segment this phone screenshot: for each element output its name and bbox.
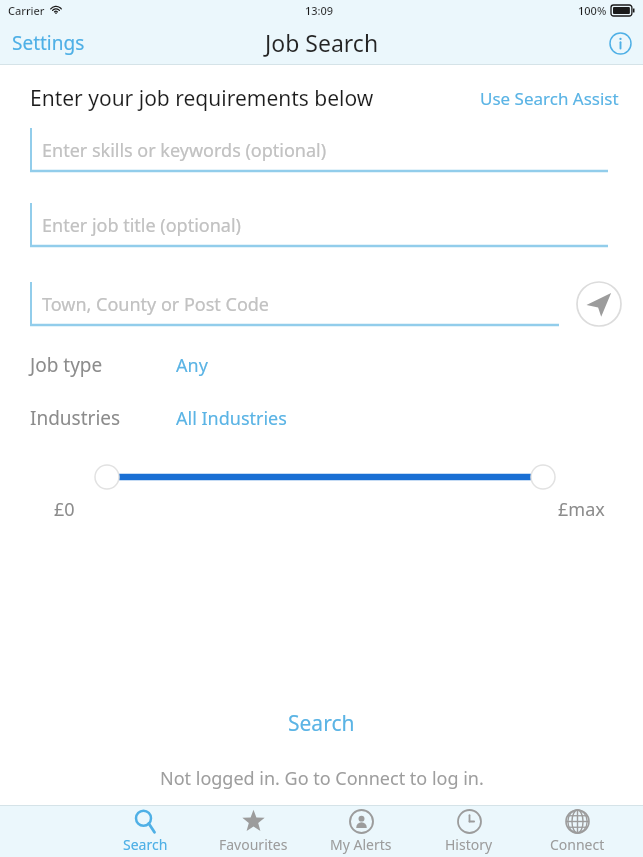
staticText: Enter your job requirements below [30,84,374,113]
button[interactable]: Search [254,701,389,746]
staticText: Connect [550,835,605,854]
button[interactable]: Search [92,806,199,857]
button[interactable]: Settings [0,23,97,63]
button[interactable]: Information [597,31,643,55]
staticText: £0 [54,497,75,522]
staticText: Favourites [219,835,288,854]
staticText: All Industries [176,406,287,431]
button[interactable]: Town, County or Post Code [30,282,559,326]
staticText: Search [123,835,168,854]
staticText: 13:09 [305,3,334,18]
staticText: Enter skills or keywords (optional) [42,138,327,163]
staticText: Any [176,353,208,378]
staticText: My Alerts [330,835,392,854]
staticText: Job Search [265,27,379,58]
staticText: Enter job title (optional) [42,213,241,238]
button[interactable]: My Alerts [307,806,415,857]
staticText: Job type [30,352,103,378]
staticText: £max [558,497,605,522]
button[interactable]: Enter job title (optional) [30,203,608,247]
button[interactable]: Enter skills or keywords (optional) [30,128,608,172]
button[interactable]: Favourites [199,806,307,857]
staticText: Settings [12,30,85,56]
staticText: 100% [578,3,607,18]
staticText: Town, County or Post Code [42,292,269,317]
staticText: History [445,835,493,854]
staticText: Search [288,709,355,738]
button[interactable]: History [415,806,523,857]
button[interactable]: Job type [0,348,643,382]
button[interactable]: Use current location [573,278,625,330]
button[interactable]: Use Search Assist [476,81,623,116]
staticText: Industries [30,405,121,431]
button[interactable]: Connect [523,806,631,857]
staticText: Carrier [8,3,45,18]
staticText: Use Search Assist [480,87,619,110]
button[interactable]: Industries [0,401,643,435]
staticText: Not logged in. Go to Connect to log in. [160,766,484,791]
